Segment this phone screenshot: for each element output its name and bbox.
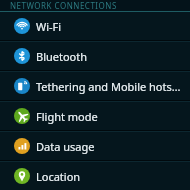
other: Location: [14, 168, 30, 184]
button[interactable]: Location: [0, 162, 190, 190]
other: Flight mode: [14, 108, 30, 124]
staticText: Bluetooth: [36, 49, 88, 64]
other: Bluetooth: [14, 48, 30, 64]
staticText: NETWORK CONNECTIONS: [10, 0, 117, 11]
button[interactable]: Bluetooth: [0, 42, 190, 70]
staticText: Wi-Fi: [36, 19, 62, 34]
staticText: Flight mode: [36, 109, 98, 124]
other: Data usage: [14, 138, 30, 154]
staticText: Tethering and Mobile hotsp..: [36, 79, 184, 94]
other: Wi-Fi: [14, 18, 30, 34]
button[interactable]: Tethering and Mobile hotspot: [0, 72, 190, 100]
button[interactable]: Wi-Fi: [0, 12, 190, 40]
other: Tethering and Mobile hotspot: [14, 78, 30, 94]
button[interactable]: Flight mode: [0, 102, 190, 130]
staticText: Data usage: [36, 139, 95, 154]
button[interactable]: Data usage: [0, 132, 190, 160]
staticText: Location: [36, 169, 81, 184]
